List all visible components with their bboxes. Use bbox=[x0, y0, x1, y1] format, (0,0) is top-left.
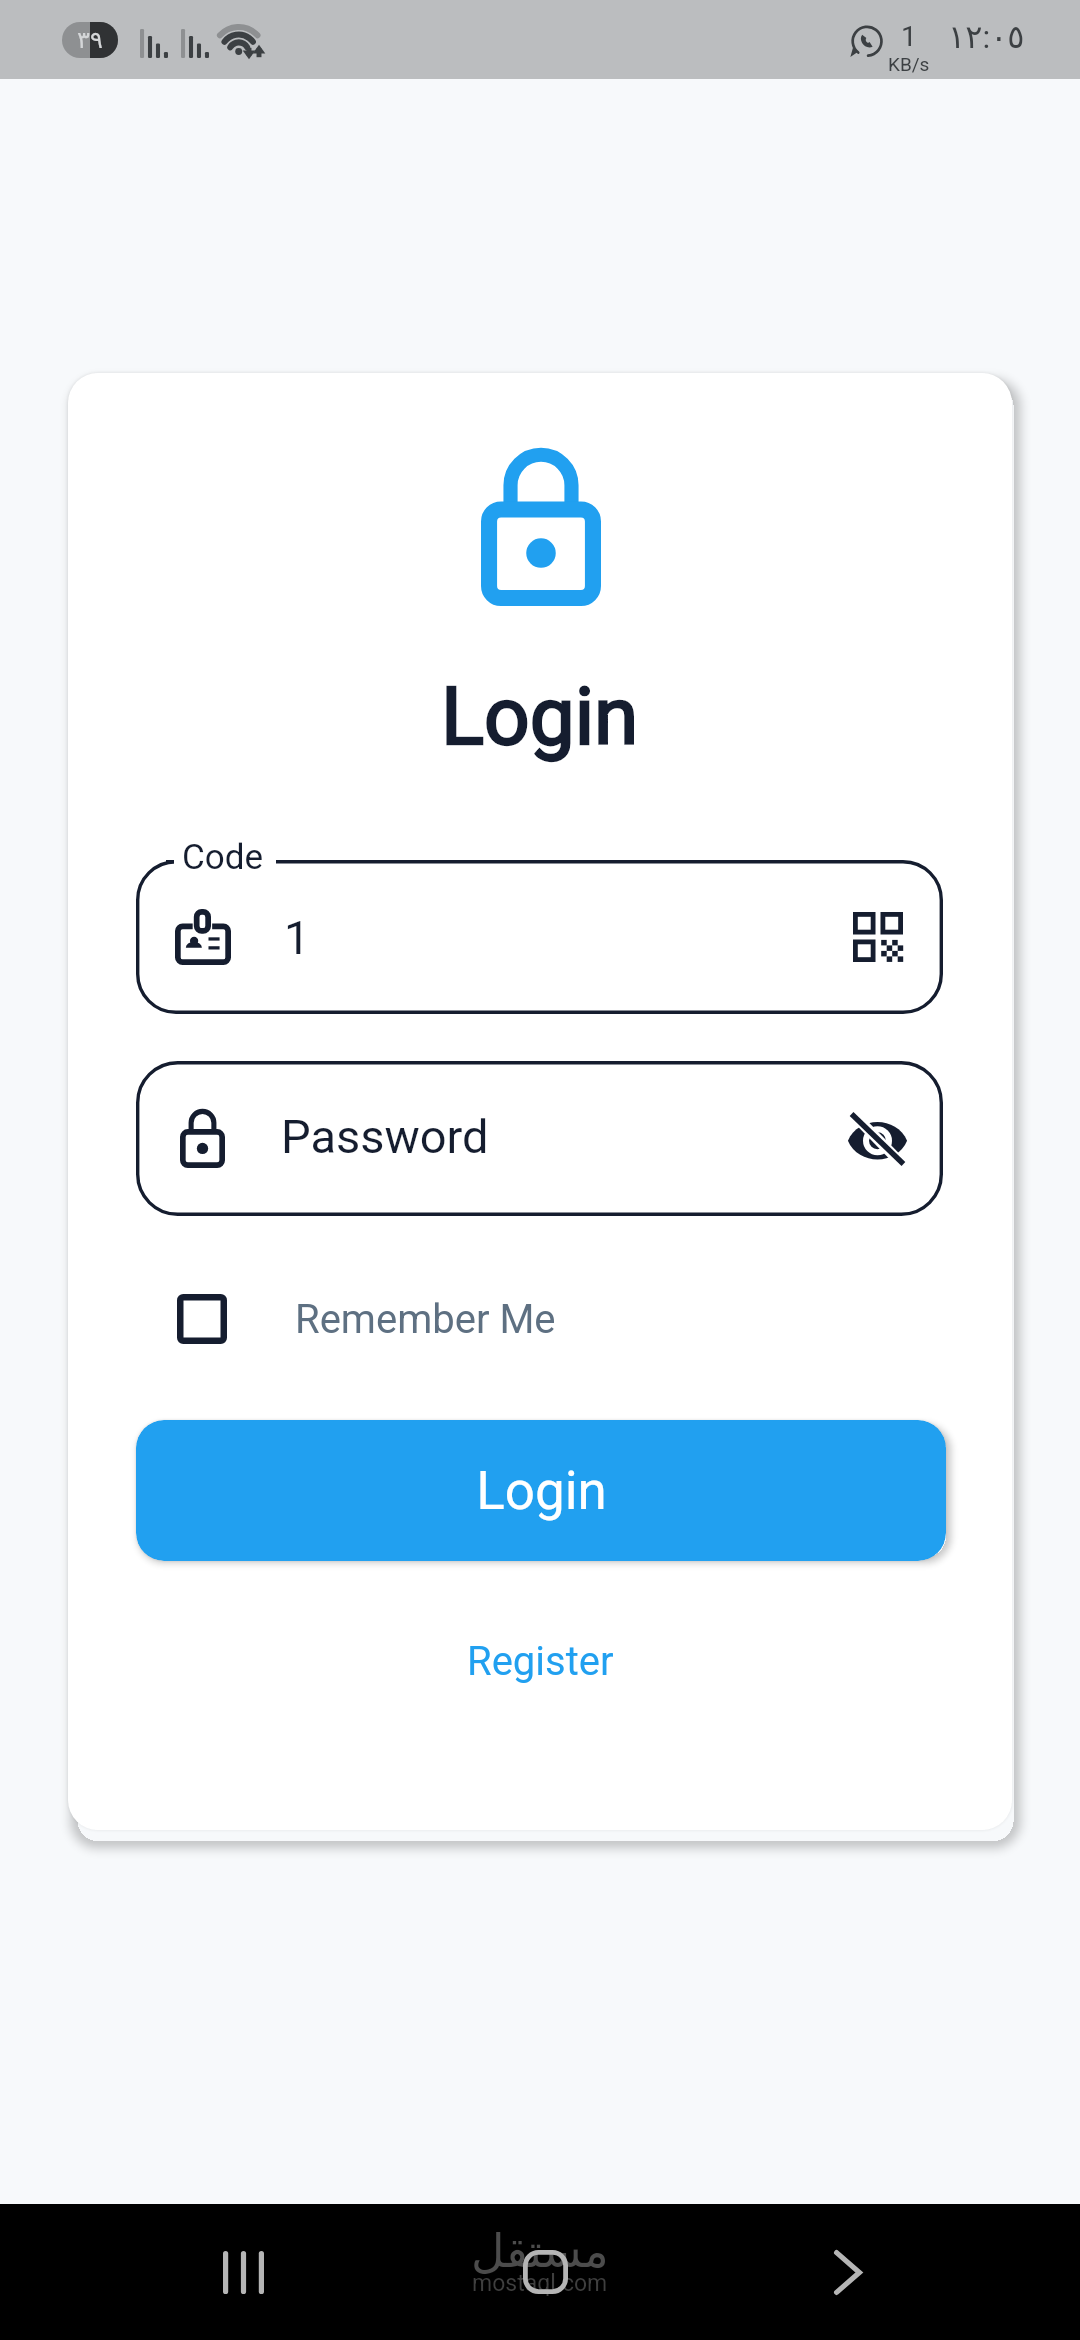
button[interactable]: Remember Me bbox=[136, 1269, 943, 1369]
button[interactable]: Show password bbox=[842, 1108, 913, 1170]
button[interactable]: Back bbox=[783, 2214, 913, 2330]
button[interactable]: Password bbox=[136, 1061, 943, 1216]
staticText: Code bbox=[182, 837, 264, 878]
staticText: Login bbox=[476, 1460, 607, 1522]
staticText: KB/s bbox=[888, 53, 930, 75]
button[interactable]: Scan QR code bbox=[848, 907, 908, 967]
staticText: Register bbox=[467, 1638, 614, 1685]
staticText: Password bbox=[281, 1109, 489, 1164]
staticText: ٣٩ bbox=[77, 26, 103, 54]
button[interactable]: Code bbox=[136, 860, 943, 1014]
button[interactable]: Home bbox=[480, 2214, 610, 2330]
staticText: 1 bbox=[901, 20, 917, 53]
staticText: Remember Me bbox=[295, 1296, 556, 1343]
staticText: 1 bbox=[284, 911, 310, 965]
staticText: mostaql.com bbox=[472, 2270, 608, 2297]
button[interactable]: Register bbox=[437, 1626, 644, 1697]
button[interactable]: Login bbox=[136, 1420, 946, 1561]
button[interactable]: Recent apps bbox=[178, 2214, 308, 2330]
staticText: ١٢:٠٥ bbox=[948, 18, 1025, 56]
staticText: Login bbox=[441, 670, 639, 764]
staticText: مستقل bbox=[471, 2224, 609, 2278]
